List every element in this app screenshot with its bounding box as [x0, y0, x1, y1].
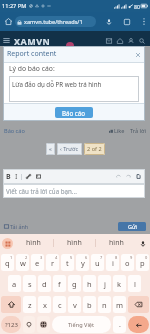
button[interactable]: Báo cáo	[55, 107, 93, 118]
button[interactable]: Trả lời	[130, 127, 146, 135]
button[interactable]: .	[113, 316, 126, 333]
button[interactable]: x	[38, 296, 51, 313]
button[interactable]: Tabs	[121, 16, 133, 28]
button[interactable]: Redo	[125, 173, 132, 180]
staticText: c	[58, 300, 62, 310]
button[interactable]: Gửi	[118, 222, 146, 231]
staticText: u	[95, 258, 100, 268]
button[interactable]: I	[15, 172, 18, 182]
button[interactable]: hình	[54, 234, 95, 252]
staticText: Báo cáo	[62, 109, 86, 117]
button[interactable]: Change language	[37, 316, 50, 333]
button[interactable]: Backspace	[128, 296, 149, 313]
staticText: b	[87, 300, 92, 310]
button[interactable]: u	[91, 254, 104, 271]
staticText: hình	[109, 238, 124, 248]
staticText: Lừa đảo dụ dỗ PR web trá hình	[12, 80, 102, 88]
button[interactable]: v	[68, 296, 81, 313]
button[interactable]: Shift	[1, 296, 21, 313]
button[interactable]: l	[128, 275, 141, 292]
button[interactable]: Voice input	[137, 238, 148, 249]
button[interactable]: i	[106, 254, 119, 271]
button[interactable]: t	[61, 254, 74, 271]
button[interactable]: Like	[109, 127, 125, 135]
staticText: Tiếng Việt	[68, 321, 95, 329]
staticText: g	[72, 279, 77, 289]
button[interactable]: f	[53, 275, 66, 292]
button[interactable]: d	[38, 275, 51, 292]
button[interactable]: 2 of 2	[84, 143, 105, 155]
button[interactable]: s	[23, 275, 36, 292]
button[interactable]: a	[8, 275, 21, 292]
button[interactable]: Preview	[135, 173, 142, 180]
button[interactable]: Enter	[128, 316, 149, 333]
button[interactable]: m	[113, 296, 126, 313]
button[interactable]: n	[98, 296, 111, 313]
button[interactable]: Alerts	[114, 35, 125, 46]
staticText: z	[28, 300, 32, 310]
button[interactable]: Account	[125, 35, 136, 46]
staticText: t	[66, 258, 69, 268]
button[interactable]: Insert image	[35, 173, 42, 180]
button[interactable]: h	[83, 275, 96, 292]
button[interactable]: p	[136, 254, 149, 271]
button[interactable]: Viết câu trả lời của bạn...	[3, 184, 145, 198]
button[interactable]: Search	[136, 35, 147, 46]
staticText: 2	[25, 255, 28, 260]
staticText: hình	[67, 238, 82, 248]
button[interactable]: ‹ Trước	[57, 143, 82, 155]
staticText: ?123	[5, 321, 18, 329]
button[interactable]: Undo	[115, 173, 122, 180]
button[interactable]: Menu	[2, 36, 11, 45]
button[interactable]: Insert link	[25, 173, 32, 180]
button[interactable]: More options	[139, 17, 148, 26]
staticText: s	[28, 279, 32, 289]
staticText: 7	[100, 255, 103, 260]
button[interactable]: B	[6, 172, 11, 182]
button[interactable]: Báo cáo	[4, 127, 25, 135]
button[interactable]: o	[121, 254, 134, 271]
button[interactable]: r	[46, 254, 59, 271]
button[interactable]: Tiếng Việt	[52, 316, 111, 333]
staticText: 4	[55, 255, 58, 260]
staticText: ‹ Trước	[60, 145, 79, 153]
staticText: 6	[85, 255, 88, 260]
button[interactable]: b	[83, 296, 96, 313]
staticText: e	[35, 258, 40, 268]
button[interactable]: e	[31, 254, 44, 271]
button[interactable]: hình	[13, 234, 53, 252]
button[interactable]: q	[1, 254, 14, 271]
staticText: x	[43, 300, 47, 310]
staticText: «	[49, 145, 52, 153]
button[interactable]: hình	[96, 234, 137, 252]
staticText: d	[42, 279, 47, 289]
button[interactable]: Emoji	[23, 316, 35, 333]
button[interactable]: xamvn.tube/threads/1	[15, 16, 96, 27]
button[interactable]: ?123	[1, 316, 21, 333]
button[interactable]: Home	[2, 15, 15, 28]
button[interactable]: Close	[133, 50, 142, 59]
staticText: q	[5, 258, 10, 268]
staticText: n	[102, 300, 107, 310]
staticText: 1	[10, 255, 13, 260]
staticText: hình	[26, 238, 41, 248]
button[interactable]: Voice search	[103, 16, 115, 28]
staticText: o	[125, 258, 130, 268]
staticText: Lý do báo cáo:	[9, 64, 55, 73]
button[interactable]: Tải ảnh	[4, 223, 29, 230]
button[interactable]: z	[23, 296, 36, 313]
staticText: Report content	[7, 49, 57, 59]
staticText: .	[119, 320, 121, 330]
button[interactable]: Inbox	[103, 35, 114, 46]
button[interactable]: c	[53, 296, 66, 313]
button[interactable]: w	[16, 254, 29, 271]
button[interactable]: «	[46, 143, 55, 155]
button[interactable]: k	[113, 275, 126, 292]
button[interactable]: Lừa đảo dụ dỗ PR web trá hình	[9, 76, 139, 102]
button[interactable]: j	[98, 275, 111, 292]
button[interactable]: Emoji suggestions	[2, 238, 13, 249]
button[interactable]: y	[76, 254, 89, 271]
staticText: l	[134, 279, 136, 289]
staticText: p	[140, 258, 145, 268]
button[interactable]: g	[68, 275, 81, 292]
